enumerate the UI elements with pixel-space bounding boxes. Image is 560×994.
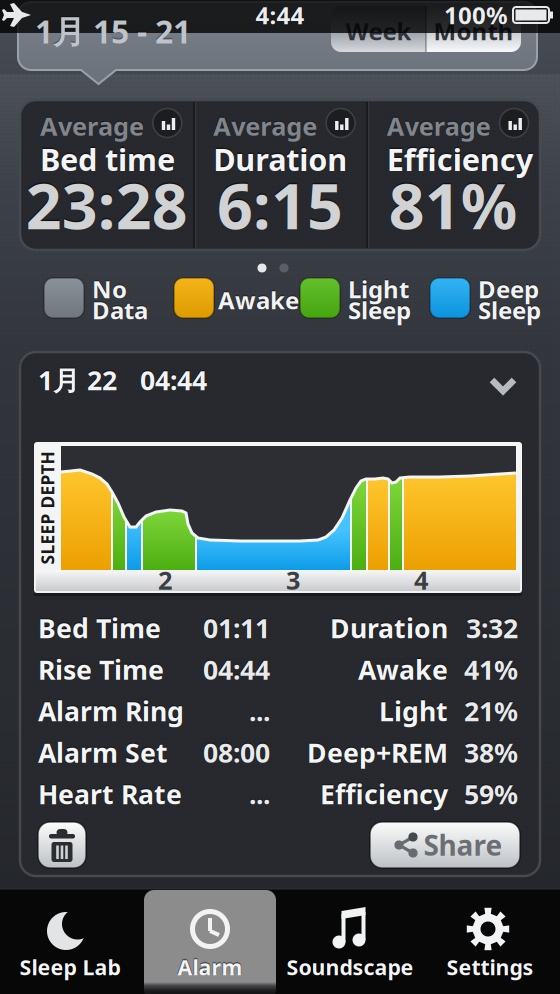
staticText: Deep+REM: [307, 735, 448, 770]
staticText: SLEEP DEPTH: [0, 496, 104, 519]
button[interactable]: Sleep Lab: [3, 889, 137, 993]
staticText: Soundscape: [286, 953, 413, 981]
staticText: Bed time: [40, 139, 175, 179]
staticText: 59%: [464, 776, 518, 812]
staticText: Bed Time: [38, 610, 161, 646]
staticText: 81%: [389, 163, 518, 247]
staticText: Alarm Ring: [38, 693, 184, 729]
staticText: Awake: [218, 284, 299, 316]
staticText: 04:44: [203, 652, 270, 687]
button[interactable]: View Efficiency chart: [499, 108, 529, 138]
staticText: No: [92, 273, 127, 305]
staticText: 23:28: [26, 163, 188, 247]
staticText: 04:44: [140, 362, 207, 398]
staticText: 38%: [464, 735, 518, 770]
staticText: 3:32: [466, 610, 518, 646]
staticText: Data: [92, 294, 148, 326]
staticText: Average: [387, 109, 491, 143]
button[interactable]: Alarm: [143, 889, 277, 993]
button[interactable]: Collapse: [482, 369, 524, 401]
staticText: Settings: [446, 953, 533, 981]
staticText: 21%: [464, 693, 518, 729]
button[interactable]: View Bed time chart: [152, 108, 182, 138]
staticText: 08:00: [203, 735, 270, 770]
staticText: 1月 15 - 21: [35, 10, 191, 52]
staticText: ...: [249, 693, 270, 729]
staticText: 4: [414, 563, 428, 597]
button[interactable]: Week: [331, 6, 426, 52]
staticText: 6:15: [217, 163, 343, 247]
button[interactable]: Settings: [423, 889, 557, 993]
staticText: Efficiency: [387, 139, 534, 179]
button[interactable]: Soundscape: [283, 889, 417, 993]
staticText: 100%: [444, 0, 508, 31]
staticText: Light: [348, 273, 409, 305]
staticText: 2: [158, 563, 172, 597]
staticText: Duration: [213, 139, 347, 179]
button[interactable]: View Duration chart: [326, 108, 356, 138]
button[interactable]: Delete: [38, 822, 86, 868]
staticText: Alarm Set: [38, 735, 168, 770]
staticText: 41%: [464, 652, 518, 687]
staticText: Rise Time: [38, 652, 164, 687]
staticText: ...: [249, 776, 270, 812]
staticText: Alarm: [177, 953, 242, 981]
staticText: Efficiency: [320, 776, 448, 812]
staticText: 1月 22: [38, 362, 117, 398]
staticText: Sleep: [478, 294, 541, 326]
button[interactable]: Month: [426, 6, 521, 52]
staticText: Average: [213, 109, 317, 143]
button[interactable]: Share: [370, 822, 520, 868]
staticText: Duration: [330, 610, 448, 646]
staticText: Light: [379, 693, 448, 729]
staticText: Deep: [478, 273, 539, 305]
staticText: Heart Rate: [38, 776, 182, 812]
staticText: Month: [433, 15, 513, 47]
staticText: Week: [345, 15, 411, 47]
staticText: Sleep: [348, 294, 411, 326]
staticText: Awake: [358, 652, 448, 687]
staticText: 4:44: [255, 0, 304, 31]
staticText: Average: [40, 109, 144, 143]
staticText: 01:11: [203, 610, 270, 646]
staticText: 3: [286, 563, 300, 597]
staticText: Share: [423, 826, 502, 864]
staticText: Sleep Lab: [19, 953, 120, 981]
